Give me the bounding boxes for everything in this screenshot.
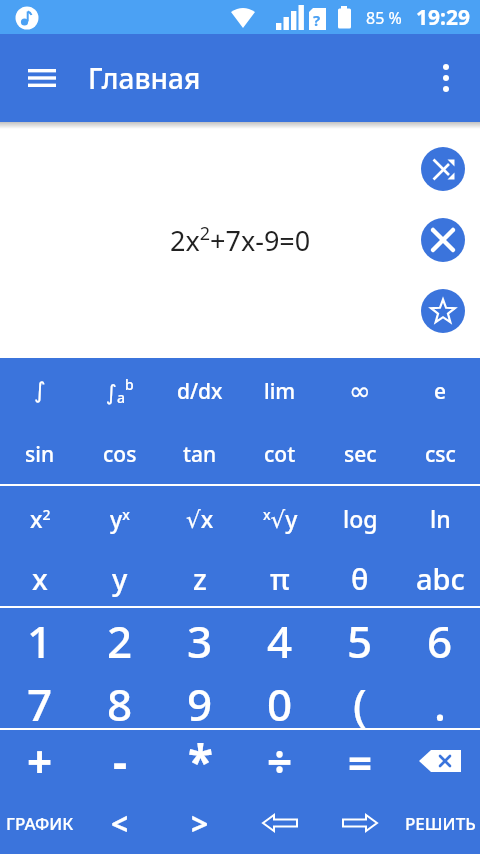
button[interactable]: tan [160,424,240,484]
button[interactable]: θ [320,550,400,606]
button[interactable]: ∫ab [80,358,160,424]
button[interactable]: ГРАФИК [0,792,80,854]
staticText: 19:29 [416,3,470,32]
staticText: d/dx [177,377,223,406]
staticText: < [111,803,129,844]
button[interactable]: РЕШИТЬ [400,792,480,854]
staticText: abc [416,559,465,598]
button[interactable]: ∫ [0,358,80,424]
staticText: y [112,559,128,598]
staticText: tan [183,440,217,469]
button[interactable]: √x [160,486,240,550]
button[interactable]: 2 [80,608,160,674]
button[interactable]: yx [80,486,160,550]
staticText: . [434,674,446,728]
button[interactable]: . [400,674,480,728]
staticText: - [113,731,128,791]
button[interactable]: * [160,730,240,792]
staticText: π [270,559,290,598]
staticText: cot [264,440,296,469]
button[interactable]: 3 [160,608,240,674]
staticText: 0 [267,674,293,728]
button[interactable]: z [160,550,240,606]
button[interactable] [240,792,320,854]
button[interactable] [320,792,400,854]
staticText: x2 [30,503,51,534]
button[interactable]: = [320,730,400,792]
button[interactable]: cot [240,424,320,484]
staticText: x [32,559,48,598]
staticText: sec [344,440,377,469]
staticText: 7 [27,674,53,728]
button[interactable] [421,218,465,262]
staticText: 4 [267,611,293,671]
staticText: log [343,503,378,534]
button[interactable] [421,147,465,191]
button[interactable]: 1 [0,608,80,674]
button[interactable]: < [80,792,160,854]
button[interactable]: lim [240,358,320,424]
staticText: csc [425,440,456,469]
button[interactable] [400,730,480,792]
button[interactable]: sec [320,424,400,484]
button[interactable]: ∞ [320,358,400,424]
button[interactable] [18,54,66,102]
button[interactable]: cos [80,424,160,484]
staticText: 2 [107,611,133,671]
button[interactable]: ÷ [240,730,320,792]
staticText: + [27,731,53,791]
staticText: ∫ [34,378,46,404]
button[interactable] [424,56,468,100]
button[interactable]: d/dx [160,358,240,424]
staticText: ГРАФИК [6,812,74,835]
staticText: cos [103,440,137,469]
button[interactable]: 7 [0,674,80,728]
staticText: РЕШИТЬ [405,812,476,835]
staticText: ( [353,674,367,728]
staticText: > [191,803,209,844]
button[interactable] [421,289,465,333]
staticText: = [348,733,373,790]
staticText: 3 [187,611,213,671]
button[interactable]: csc [400,424,480,484]
button[interactable]: 4 [240,608,320,674]
button[interactable]: > [160,792,240,854]
button[interactable]: y [80,550,160,606]
staticText: 6 [427,611,453,671]
staticText: ÷ [267,731,293,791]
button[interactable]: - [80,730,160,792]
button[interactable]: + [0,730,80,792]
button[interactable]: x√y [240,486,320,550]
button[interactable]: x [0,550,80,606]
button[interactable]: sin [0,424,80,484]
button[interactable]: π [240,550,320,606]
staticText: ∫ab [106,375,134,407]
staticText: 8 [107,674,133,728]
button[interactable]: e [400,358,480,424]
staticText: 2x2+7x-9=0 [170,221,311,259]
button[interactable]: 5 [320,608,400,674]
button[interactable]: 6 [400,608,480,674]
button[interactable]: ln [400,486,480,550]
staticText: yx [110,503,130,534]
staticText: 85 % [366,7,402,29]
staticText: ∞ [349,376,371,406]
staticText: z [193,559,207,598]
button[interactable]: ( [320,674,400,728]
button[interactable]: 9 [160,674,240,728]
button[interactable]: x2 [0,486,80,550]
staticText: ? [313,10,321,30]
button[interactable]: abc [400,550,480,606]
staticText: * [188,730,213,792]
button[interactable]: 8 [80,674,160,728]
staticText: Главная [88,59,201,97]
staticText: 1 [27,611,53,671]
button[interactable]: log [320,486,400,550]
staticText: √x [186,503,214,534]
staticText: θ [351,559,369,598]
staticText: ln [430,503,451,534]
button[interactable]: 0 [240,674,320,728]
staticText: e [434,377,447,406]
staticText: 5 [347,611,373,671]
staticText: lim [264,377,296,406]
